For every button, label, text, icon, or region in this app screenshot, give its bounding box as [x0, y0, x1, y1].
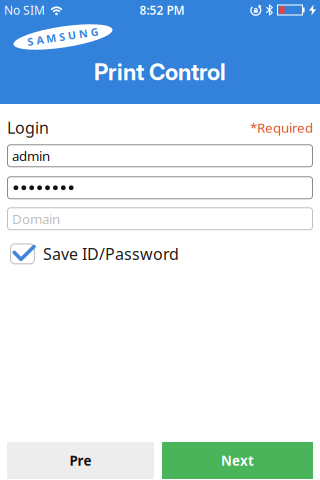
button[interactable]: Pre: [7, 442, 154, 479]
staticText: admin: [12, 147, 50, 165]
staticText: S A M S U N G: [27, 29, 99, 44]
button[interactable]: Save ID/Password: [7, 243, 313, 264]
staticText: 8:52 PM: [139, 2, 184, 18]
staticText: Save ID/Password: [43, 243, 179, 264]
staticText: Domain: [12, 210, 60, 228]
staticText: Next: [221, 452, 254, 469]
staticText: No SIM: [4, 2, 45, 18]
staticText: Pre: [69, 452, 91, 469]
staticText: *Required: [250, 119, 313, 136]
button[interactable]: Login ID: [7, 144, 313, 167]
button[interactable]: Domain: [7, 207, 313, 230]
staticText: Print Control: [94, 58, 226, 86]
button[interactable]: Next: [162, 442, 313, 479]
staticText: Login: [7, 117, 49, 138]
button[interactable]: Password: [7, 176, 313, 199]
